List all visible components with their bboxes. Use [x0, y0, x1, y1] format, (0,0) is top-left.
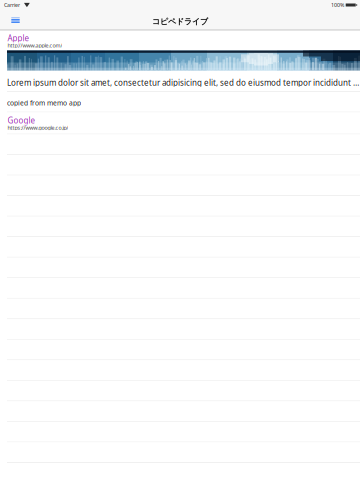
- staticText: copied from memo app: [7, 98, 81, 107]
- staticText: Carrier: [4, 1, 20, 9]
- staticText: コピペドライブ: [152, 17, 208, 26]
- button[interactable]: Apple: [0, 31, 360, 91]
- button[interactable]: Menu: [0, 10, 31, 30]
- staticText: Apple: [7, 33, 29, 43]
- staticText: Lorem ipsum dolor sit amet, consectetur …: [7, 77, 360, 88]
- button[interactable]: copied from memo app: [0, 92, 360, 112]
- staticText: https://www.google.co.jp/: [7, 124, 68, 131]
- button[interactable]: Google: [0, 112, 360, 134]
- staticText: 100%: [331, 1, 344, 9]
- staticText: Google: [7, 115, 35, 126]
- staticText: http://www.apple.com/: [7, 42, 62, 49]
